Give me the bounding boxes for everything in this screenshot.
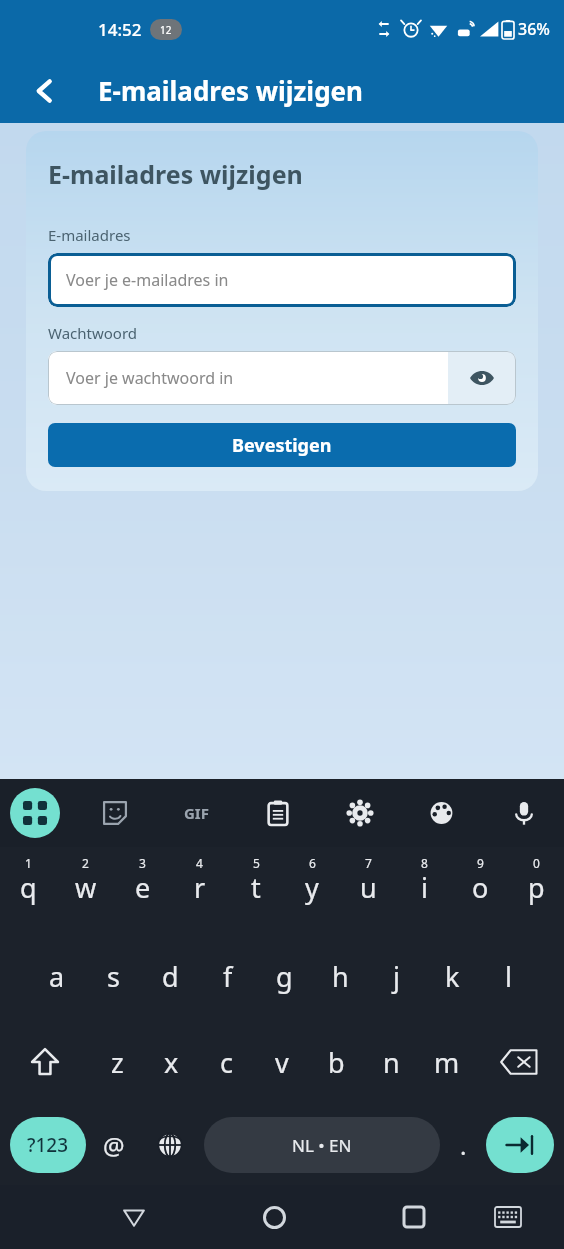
staticText: j: [393, 958, 400, 995]
staticText: Voer je e-mailadres in: [66, 269, 229, 291]
button[interactable]: 3: [114, 847, 171, 933]
button[interactable]: Back: [110, 1193, 158, 1241]
staticText: 5: [253, 855, 260, 871]
staticText: NL • EN: [292, 1134, 352, 1157]
staticText: m: [434, 1044, 460, 1081]
button[interactable]: ?123: [10, 1117, 86, 1173]
button[interactable]: Period: [440, 1105, 486, 1185]
button[interactable]: Show password: [448, 351, 516, 405]
button[interactable]: k: [424, 933, 480, 1019]
staticText: s: [107, 958, 120, 995]
staticText: a: [49, 958, 65, 995]
staticText: 1: [25, 855, 32, 871]
staticText: l: [505, 958, 512, 995]
staticText: .: [460, 1129, 467, 1162]
button[interactable]: 5: [228, 847, 284, 933]
button[interactable]: Bevestigen: [48, 423, 516, 467]
button[interactable]: 9: [452, 847, 508, 933]
button[interactable]: 6: [284, 847, 340, 933]
staticText: Bevestigen: [232, 433, 332, 458]
button[interactable]: d: [142, 933, 199, 1019]
button[interactable]: Keyboard modes: [10, 788, 60, 838]
button[interactable]: GIF: [170, 787, 222, 839]
staticText: 9: [477, 855, 484, 871]
staticText: u: [360, 869, 377, 906]
button[interactable]: Recents: [390, 1193, 438, 1241]
staticText: p: [528, 869, 545, 906]
button[interactable]: z: [90, 1019, 144, 1105]
staticText: y: [305, 869, 319, 906]
staticText: E-mailadres wijzigen: [98, 73, 363, 108]
staticText: h: [332, 958, 349, 995]
button[interactable]: 7: [340, 847, 396, 933]
staticText: @: [103, 1129, 125, 1162]
staticText: E-mailadres wijzigen: [48, 157, 303, 191]
button[interactable]: c: [199, 1019, 254, 1105]
button[interactable]: a: [28, 933, 85, 1019]
staticText: 8: [421, 855, 428, 871]
button[interactable]: Voer je wachtwoord in: [48, 351, 448, 405]
staticText: o: [472, 869, 489, 906]
button[interactable]: v: [254, 1019, 309, 1105]
button[interactable]: Voice input: [498, 787, 550, 839]
button[interactable]: Settings: [334, 787, 386, 839]
staticText: 2: [82, 855, 89, 871]
button[interactable]: 4: [171, 847, 228, 933]
staticText: 12: [160, 23, 172, 37]
button[interactable]: 8: [396, 847, 452, 933]
staticText: 36%: [518, 18, 550, 40]
staticText: c: [220, 1044, 233, 1081]
staticText: q: [20, 869, 37, 906]
button[interactable]: 1: [0, 847, 57, 933]
staticText: 3: [139, 855, 146, 871]
staticText: w: [75, 869, 97, 906]
button[interactable]: Hide keyboard: [484, 1193, 532, 1241]
button[interactable]: Shift: [0, 1019, 90, 1105]
button[interactable]: j: [368, 933, 424, 1019]
staticText: ?123: [27, 1132, 69, 1158]
button[interactable]: n: [364, 1019, 419, 1105]
staticText: g: [276, 958, 293, 995]
staticText: e: [135, 869, 151, 906]
staticText: d: [162, 958, 179, 995]
button[interactable]: s: [85, 933, 142, 1019]
button[interactable]: l: [480, 933, 536, 1019]
button[interactable]: Theme: [416, 787, 468, 839]
staticText: z: [111, 1044, 124, 1081]
staticText: E-mailadres: [48, 225, 131, 245]
button[interactable]: 0: [508, 847, 564, 933]
staticText: t: [251, 869, 261, 906]
button[interactable]: At sign: [86, 1105, 142, 1185]
staticText: 6: [309, 855, 316, 871]
button[interactable]: Stickers: [89, 787, 141, 839]
button[interactable]: x: [144, 1019, 199, 1105]
staticText: 14:52: [98, 18, 142, 41]
button[interactable]: Voer je e-mailadres in: [48, 253, 516, 307]
staticText: f: [223, 958, 233, 995]
button[interactable]: Home: [250, 1193, 298, 1241]
button[interactable]: f: [199, 933, 256, 1019]
button[interactable]: Back: [22, 68, 68, 114]
staticText: Voer je wachtwoord in: [66, 367, 234, 389]
button[interactable]: NL • EN: [204, 1117, 440, 1173]
staticText: 0: [533, 855, 540, 871]
button[interactable]: b: [309, 1019, 364, 1105]
button[interactable]: Change language: [142, 1105, 198, 1185]
staticText: b: [328, 1044, 345, 1081]
button[interactable]: h: [312, 933, 368, 1019]
button[interactable]: Backspace: [474, 1019, 564, 1105]
staticText: Wachtwoord: [48, 323, 138, 343]
staticText: i: [421, 869, 428, 906]
button[interactable]: m: [419, 1019, 474, 1105]
staticText: k: [445, 958, 460, 995]
staticText: 4: [196, 855, 203, 871]
button[interactable]: g: [256, 933, 312, 1019]
button[interactable]: 2: [57, 847, 114, 933]
staticText: GIF: [184, 803, 209, 823]
button[interactable]: Clipboard: [252, 787, 304, 839]
staticText: v: [275, 1044, 289, 1081]
staticText: 7: [365, 855, 372, 871]
button[interactable]: Enter: [486, 1117, 554, 1173]
staticText: x: [164, 1044, 179, 1081]
staticText: n: [383, 1044, 400, 1081]
